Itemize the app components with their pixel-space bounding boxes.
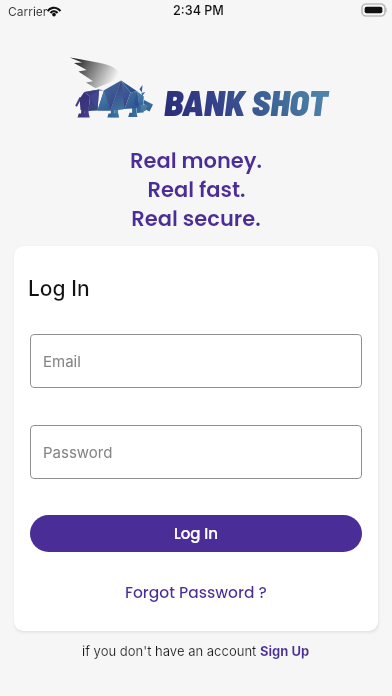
button[interactable]: Email <box>30 334 362 388</box>
button[interactable]: Log In <box>30 515 362 552</box>
button[interactable]: Forgot Password ? <box>125 582 267 604</box>
other: Battery full <box>362 4 387 16</box>
staticText: Real fast. <box>147 175 246 204</box>
staticText: Real secure. <box>131 204 261 233</box>
staticText: Log In <box>174 523 218 544</box>
staticText: Real money. <box>130 146 262 175</box>
staticText: Carrier <box>8 4 48 19</box>
staticText: BANK SHOT <box>164 80 328 123</box>
staticText: Log In <box>28 276 90 301</box>
button[interactable]: Password <box>30 425 362 479</box>
button[interactable]: if you don't have an account Sign Up <box>82 643 310 659</box>
staticText: 2:34 PM <box>173 3 224 18</box>
staticText: Password <box>43 443 113 461</box>
other: Wi-Fi signal <box>46 4 62 16</box>
staticText: Email <box>43 352 81 370</box>
